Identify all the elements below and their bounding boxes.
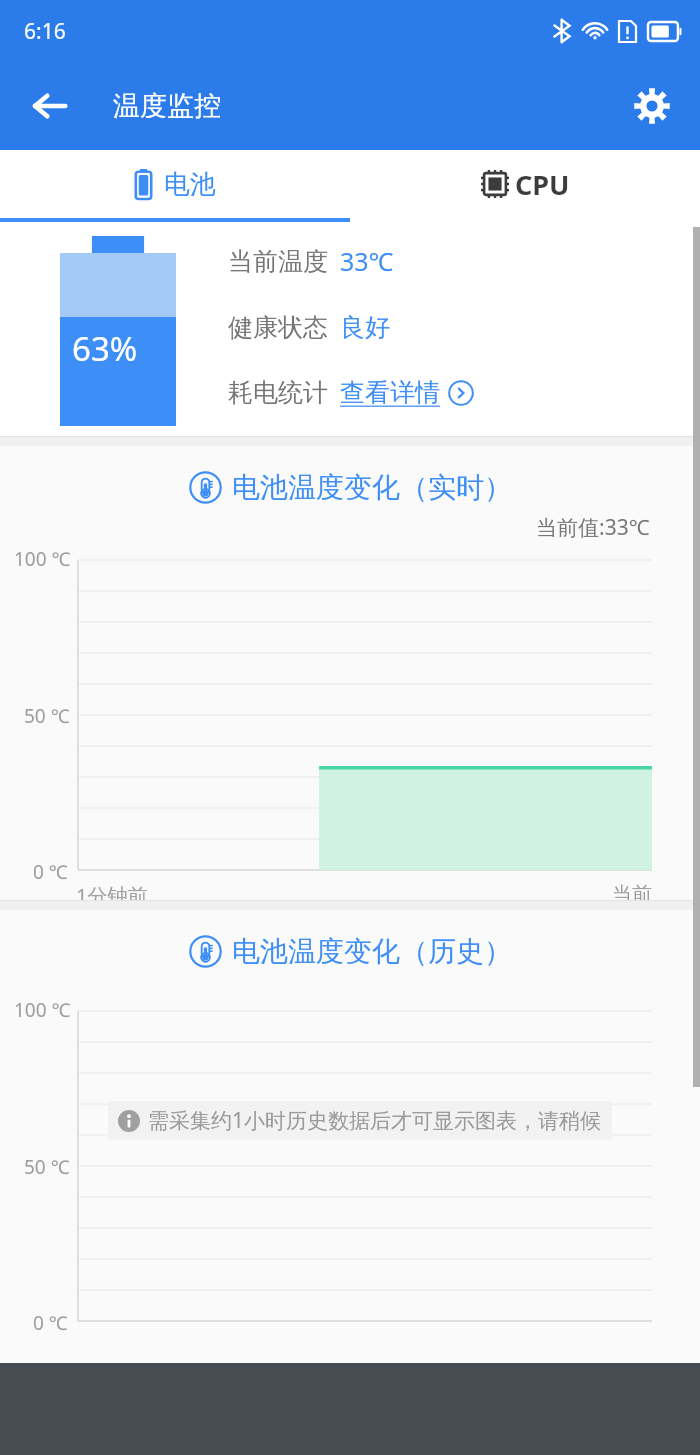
staticText: 1分钟前: [76, 882, 148, 901]
button[interactable]: Settings: [624, 78, 680, 134]
staticText: 良好: [340, 312, 390, 343]
staticText: 33℃: [340, 244, 394, 278]
staticText: 50 ℃: [24, 1154, 70, 1180]
button[interactable]: 查看详情: [340, 377, 474, 408]
staticText: 查看详情: [340, 377, 440, 408]
staticText: 50 ℃: [24, 703, 70, 729]
staticText: 当前值:33℃: [536, 513, 650, 542]
staticText: 耗电统计: [228, 377, 328, 408]
staticText: 温度监控: [113, 89, 221, 123]
staticText: 0 ℃: [33, 1310, 68, 1336]
button[interactable]: 电池: [0, 150, 350, 218]
staticText: 当前温度: [228, 246, 328, 277]
staticText: 100 ℃: [14, 997, 71, 1023]
staticText: 63%: [72, 326, 138, 371]
staticText: 100 ℃: [14, 546, 71, 572]
staticText: 电池: [164, 168, 216, 201]
staticText: 0 ℃: [33, 859, 68, 885]
staticText: 健康状态: [228, 312, 328, 343]
staticText: 当前: [612, 882, 652, 901]
staticText: 电池温度变化（历史）: [232, 934, 512, 969]
button[interactable]: CPU: [350, 150, 700, 218]
staticText: 电池温度变化（实时）: [232, 470, 512, 505]
staticText: CPU: [515, 166, 570, 203]
staticText: 需采集约1小时历史数据后才可显示图表，请稍候: [148, 1106, 602, 1135]
button[interactable]: Back: [22, 78, 78, 134]
staticText: 6:16: [24, 17, 66, 46]
